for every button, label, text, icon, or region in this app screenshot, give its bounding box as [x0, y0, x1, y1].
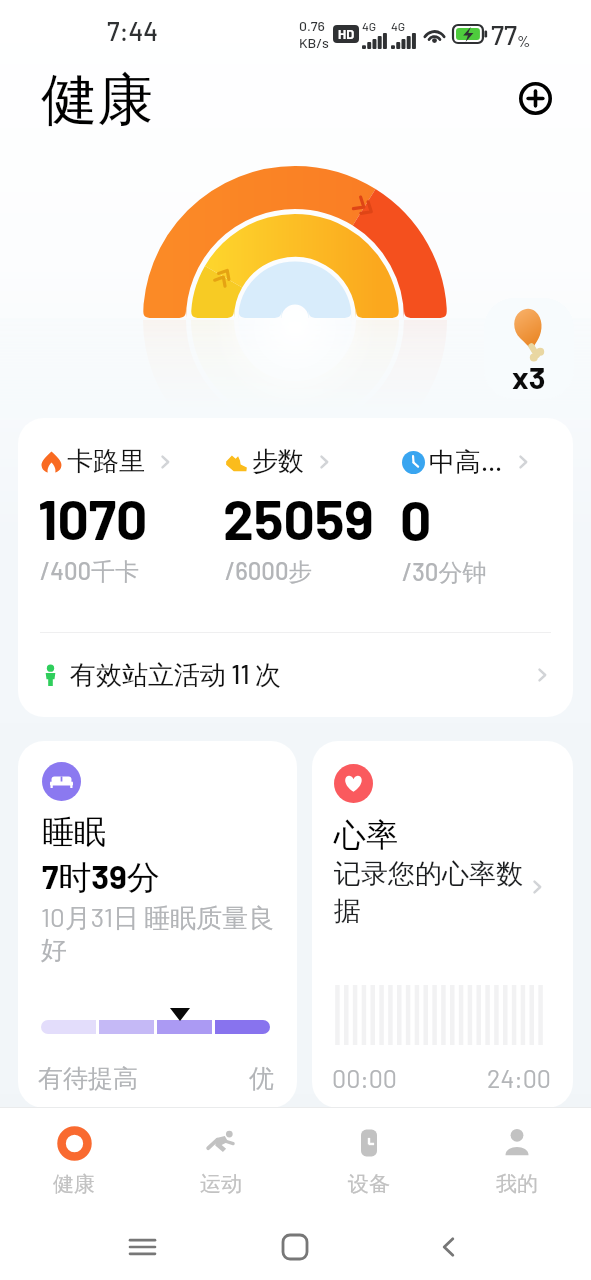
staticText: 步数 — [252, 445, 304, 478]
staticText: 0 — [400, 486, 432, 552]
button[interactable]: 有效站立活动 11 次 — [18, 633, 573, 717]
button[interactable]: Back — [425, 1223, 473, 1271]
button[interactable]: 卡路里 — [40, 445, 220, 587]
staticText: 我的 — [496, 1171, 538, 1197]
staticText: KB/s — [299, 34, 329, 51]
staticText: 4G — [391, 19, 406, 33]
staticText: 77 — [491, 18, 517, 50]
staticText: 24:00 — [487, 1063, 551, 1093]
staticText: 健康 — [53, 1171, 95, 1197]
staticText: 运动 — [200, 1171, 242, 1197]
staticText: 0.76 — [299, 17, 325, 34]
staticText: 00:00 — [332, 1063, 397, 1093]
staticText: /30分钟 — [402, 557, 487, 588]
staticText: x3 — [512, 358, 546, 395]
button[interactable]: 中高… — [402, 445, 573, 588]
staticText: 10月31日 睡眠质量良好 — [41, 901, 279, 967]
staticText: 睡眠 — [42, 812, 106, 852]
button[interactable]: 心率 — [312, 741, 573, 1108]
button[interactable]: 健康 — [0, 1108, 147, 1214]
staticText: 7时39分 — [42, 856, 160, 899]
staticText: 心率 — [334, 815, 398, 855]
staticText: /400千卡 — [40, 556, 140, 587]
button[interactable]: 我的 — [443, 1108, 591, 1214]
staticText: 有待提高 — [38, 1063, 138, 1094]
button[interactable]: 设备 — [295, 1108, 443, 1214]
staticText: 中高… — [429, 445, 503, 479]
staticText: 7:44 — [107, 15, 159, 46]
staticText: 优 — [249, 1063, 274, 1094]
staticText: 4G — [362, 19, 377, 33]
staticText: 25059 — [223, 485, 374, 551]
button[interactable]: 睡眠 — [18, 741, 297, 1108]
button[interactable]: Add — [514, 77, 556, 119]
staticText: % — [517, 31, 531, 50]
button[interactable]: 步数 — [225, 445, 400, 587]
staticText: 卡路里 — [67, 445, 145, 478]
button[interactable]: x3 — [484, 298, 574, 399]
button[interactable]: Home — [271, 1223, 319, 1271]
staticText: 设备 — [348, 1171, 390, 1197]
staticText: 记录您的心率数据 — [334, 857, 527, 928]
button[interactable]: Recents — [118, 1223, 166, 1271]
staticText: 有效站立活动 11 次 — [70, 658, 281, 692]
staticText: 1070 — [38, 485, 148, 551]
button[interactable]: 运动 — [147, 1108, 295, 1214]
staticText: /6000步 — [225, 556, 313, 587]
staticText: 健康 — [41, 65, 153, 136]
staticText: HD — [338, 26, 355, 42]
